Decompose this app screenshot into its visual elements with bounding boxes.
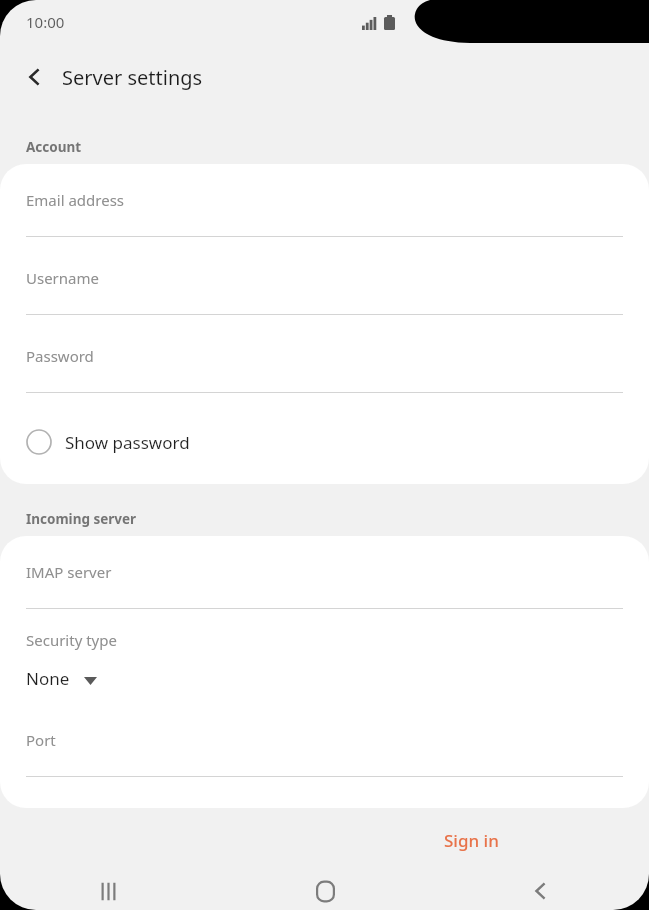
staticText: Sign in — [444, 829, 499, 852]
staticText: 10:00 — [26, 12, 65, 32]
button[interactable]: Show password — [0, 414, 649, 470]
staticText: Incoming server — [26, 510, 137, 528]
button[interactable]: Back — [433, 872, 649, 910]
button[interactable]: Port — [0, 720, 649, 798]
staticText: Email address — [26, 190, 125, 210]
button[interactable]: Security type — [0, 630, 649, 720]
button[interactable]: Email address — [0, 180, 649, 258]
button[interactable]: Recents — [0, 872, 217, 910]
button[interactable]: Home — [217, 872, 433, 910]
button[interactable]: Back — [13, 55, 57, 99]
staticText: Security type — [26, 630, 117, 650]
staticText: Username — [26, 268, 99, 288]
staticText: Show password — [65, 431, 190, 454]
button[interactable]: Username — [0, 258, 649, 336]
staticText: Server settings — [62, 64, 203, 91]
button[interactable]: IMAP server — [0, 552, 649, 630]
staticText: Password — [26, 346, 94, 366]
staticText: Port — [26, 730, 56, 750]
staticText: None — [26, 667, 70, 690]
staticText: IMAP server — [26, 562, 112, 582]
staticText: Account — [26, 138, 82, 156]
button[interactable]: Password — [0, 336, 649, 414]
button[interactable]: Sign in — [432, 820, 511, 861]
